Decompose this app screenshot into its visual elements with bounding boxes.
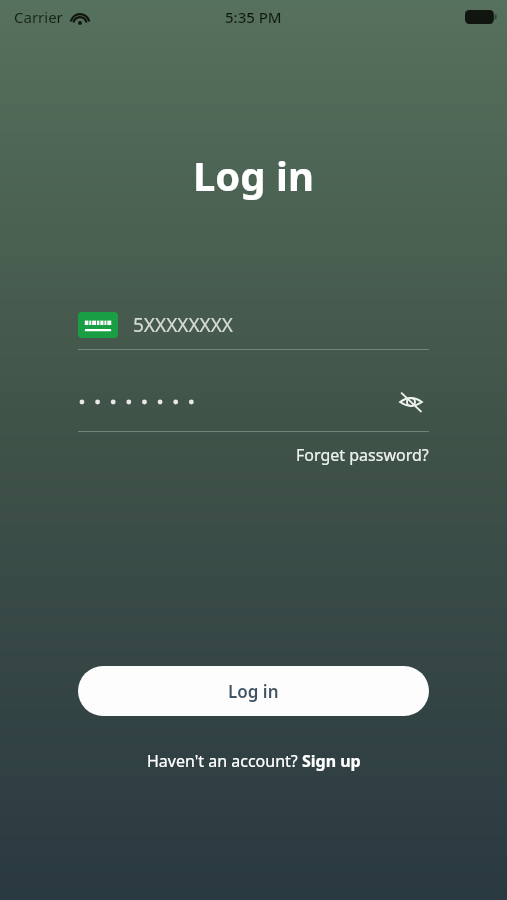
staticText: 5XXXXXXXX: [133, 312, 233, 338]
button[interactable]: Forget password?: [296, 440, 429, 470]
staticText: Log in: [228, 680, 279, 703]
button[interactable]: Log in: [78, 666, 429, 716]
staticText: Log in: [0, 148, 507, 202]
button[interactable]: Show password: [393, 384, 429, 420]
staticText: Haven't an account? Sign up: [147, 750, 361, 772]
staticText: 5:35 PM: [225, 7, 282, 27]
staticText: Forget password?: [296, 444, 429, 466]
button[interactable]: Show password: [78, 380, 429, 424]
button[interactable]: Haven't an account? Sign up: [139, 746, 369, 776]
staticText: Carrier: [14, 7, 63, 27]
button[interactable]: 5XXXXXXXX: [78, 306, 429, 344]
